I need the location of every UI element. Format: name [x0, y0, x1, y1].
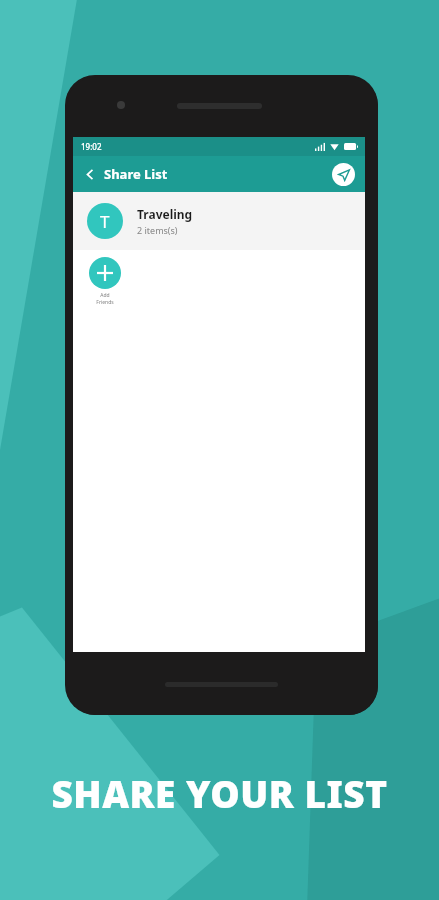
button[interactable]: T	[73, 192, 365, 250]
staticText: SHARE YOUR LIST	[0, 768, 439, 818]
button[interactable]: Add Friends	[87, 257, 123, 305]
staticText: 19:02	[81, 141, 102, 152]
button[interactable]: Send	[332, 163, 355, 186]
staticText: T	[100, 210, 110, 233]
staticText: 2 items(s)	[137, 224, 178, 236]
staticText: Share List	[104, 165, 168, 183]
staticText: Add Friends	[96, 292, 114, 305]
button[interactable]: Back	[79, 163, 101, 185]
staticText: Traveling	[137, 206, 193, 222]
